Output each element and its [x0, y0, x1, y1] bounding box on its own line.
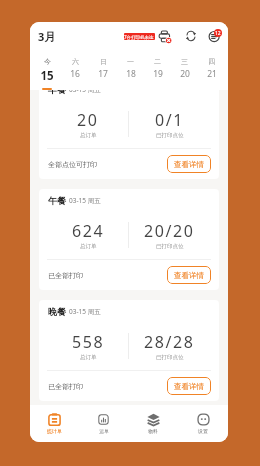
- staticText: 总订单: [80, 132, 97, 139]
- staticText: 3月: [38, 29, 56, 44]
- staticText: 21: [207, 68, 217, 80]
- button[interactable]: 日: [89, 50, 117, 90]
- button[interactable]: 统计单: [30, 405, 79, 442]
- staticText: 已全部打印: [48, 271, 83, 280]
- button[interactable]: 物料: [128, 405, 178, 442]
- staticText: 早餐: [48, 90, 66, 95]
- button[interactable]: 今: [33, 50, 61, 90]
- staticText: 今: [44, 57, 51, 66]
- staticText: 一: [127, 57, 134, 66]
- staticText: 03-15 周五: [69, 196, 101, 205]
- button[interactable]: 设置: [178, 405, 228, 442]
- staticText: 查看详情: [174, 160, 204, 169]
- button[interactable]: 一: [117, 50, 144, 90]
- button[interactable]: 午餐: [39, 189, 219, 290]
- staticText: 四: [208, 57, 215, 66]
- staticText: 全部点位可打印: [48, 160, 97, 169]
- button[interactable]: 查看详情: [167, 266, 211, 284]
- staticText: 六: [72, 57, 79, 66]
- button[interactable]: 三: [171, 50, 198, 90]
- button[interactable]: 查看详情: [167, 155, 211, 173]
- staticText: 17: [98, 68, 108, 80]
- button[interactable]: 四: [198, 50, 225, 90]
- staticText: 已打印点位: [156, 243, 184, 250]
- staticText: 19: [153, 68, 163, 80]
- staticText: 二: [154, 57, 161, 66]
- staticText: 03-15 周五: [69, 90, 101, 94]
- staticText: 午餐: [48, 195, 66, 206]
- staticText: 物料: [148, 428, 158, 434]
- staticText: 统计单: [47, 428, 62, 434]
- staticText: 设置: [198, 428, 208, 434]
- button[interactable]: 早餐: [39, 90, 219, 179]
- button[interactable]: Notifications: [208, 29, 222, 43]
- staticText: 总订单: [80, 243, 97, 250]
- staticText: 0/1: [155, 109, 185, 131]
- staticText: 16: [70, 68, 80, 80]
- staticText: 运单: [99, 428, 109, 434]
- staticText: 20/20: [144, 220, 195, 242]
- staticText: 总订单: [80, 354, 97, 361]
- button[interactable]: 查看详情: [167, 377, 211, 395]
- staticText: 查看详情: [174, 271, 204, 280]
- staticText: 三: [181, 57, 188, 66]
- staticText: 20: [180, 68, 190, 80]
- staticText: 624: [72, 220, 105, 242]
- button[interactable]: 运单: [79, 405, 128, 442]
- button[interactable]: 晚餐: [39, 300, 219, 401]
- button[interactable]: 六: [61, 50, 89, 90]
- staticText: 已全部打印: [48, 382, 83, 391]
- staticText: 查看详情: [174, 382, 204, 391]
- staticText: 日: [100, 57, 107, 66]
- staticText: 已打印点位: [156, 354, 184, 361]
- staticText: 7台打印机未连接: [124, 34, 155, 40]
- staticText: 15: [40, 68, 54, 84]
- staticText: 晚餐: [48, 306, 66, 317]
- button[interactable]: 二: [144, 50, 171, 90]
- button[interactable]: Printer disconnected: [158, 30, 171, 43]
- staticText: 已打印点位: [156, 132, 184, 139]
- staticText: 03-15 周五: [69, 307, 101, 316]
- staticText: 12: [215, 30, 221, 37]
- staticText: 28/28: [144, 331, 195, 353]
- staticText: 20: [77, 109, 99, 131]
- staticText: 18: [126, 68, 136, 80]
- button[interactable]: Refresh: [185, 30, 197, 42]
- staticText: 558: [72, 331, 105, 353]
